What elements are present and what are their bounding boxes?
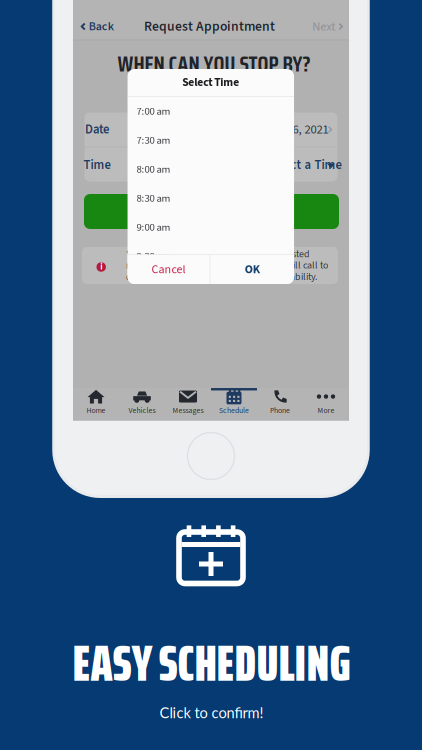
button[interactable]: Home xyxy=(73,388,119,421)
button[interactable]: OK xyxy=(210,255,294,284)
staticText: Aug 26, 2021 xyxy=(263,120,328,138)
staticText: Time xyxy=(83,156,110,174)
staticText: Date xyxy=(85,120,109,138)
staticText: Select a Time xyxy=(268,156,341,174)
staticText: 9:00 am xyxy=(137,220,171,235)
staticText: 8:00 am xyxy=(137,162,171,177)
button[interactable]: Phone xyxy=(257,388,303,421)
staticText: Back xyxy=(89,18,114,35)
staticText: 9:30 am xyxy=(137,249,171,264)
button[interactable]: 8:00 am xyxy=(128,155,294,184)
button[interactable]: 7:30 am xyxy=(128,126,294,155)
staticText: confirm your appointment time and availa… xyxy=(126,270,317,284)
staticText: Cancel xyxy=(152,261,186,278)
staticText: Vehicles xyxy=(128,405,155,416)
staticText: Select Time xyxy=(182,74,239,91)
button[interactable]: 7:00 am xyxy=(128,97,294,126)
button[interactable]: 8:30 am xyxy=(128,184,294,213)
staticText: Messages xyxy=(172,405,203,416)
staticText: 7:30 am xyxy=(137,133,171,148)
staticText: 7:00 am xyxy=(137,104,171,119)
button[interactable]: Next xyxy=(305,13,350,39)
staticText: OK xyxy=(245,261,260,278)
staticText: Click to confirm! xyxy=(159,704,263,721)
staticText: More xyxy=(317,405,334,416)
button[interactable]: More xyxy=(303,388,349,421)
staticText: Home xyxy=(86,405,105,416)
button[interactable]: Cancel xyxy=(128,255,210,284)
button[interactable]: 9:00 am xyxy=(128,213,294,242)
staticText: Next xyxy=(312,17,335,35)
button[interactable]: Back xyxy=(74,13,121,39)
staticText: i xyxy=(100,260,102,273)
button[interactable]: Vehicles xyxy=(119,388,165,421)
button[interactable]: Schedule xyxy=(211,388,257,421)
button[interactable]: 9:30 am xyxy=(128,242,294,271)
button[interactable]: Messages xyxy=(165,388,211,421)
staticText: may not be available. A service advisor … xyxy=(126,258,328,273)
staticText: 8:30 am xyxy=(137,191,171,206)
button[interactable]: SCHEDULE NOW xyxy=(84,194,339,229)
staticText: Schedule xyxy=(219,405,249,416)
staticText: Phone xyxy=(270,405,290,416)
staticText: *Please note that the appointment reques… xyxy=(126,247,310,261)
staticText: Request Appointment xyxy=(144,17,275,36)
staticText: EASY SCHEDULING xyxy=(72,623,350,703)
staticText: WHEN CAN YOU STOP BY? xyxy=(117,47,310,81)
